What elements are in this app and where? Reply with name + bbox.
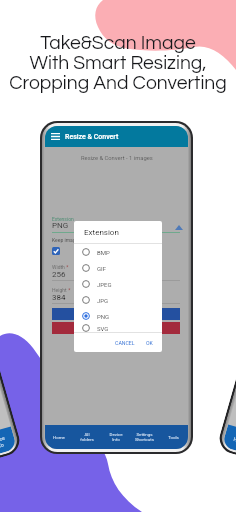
staticText: Resize & Convert <box>65 133 119 141</box>
staticText: Home <box>233 436 236 445</box>
staticText: * <box>67 287 71 293</box>
staticText: JPEG <box>97 281 112 288</box>
button[interactable]: SVG <box>74 324 162 332</box>
staticText: Resize & Convert - 1 images <box>81 155 153 162</box>
staticText: GIF <box>97 265 107 272</box>
staticText: OK <box>146 340 153 346</box>
button[interactable]: Home <box>45 425 73 449</box>
staticText: Extension <box>84 228 119 237</box>
button[interactable]: JPEG <box>74 276 162 292</box>
button[interactable]: All folders <box>73 425 101 449</box>
button[interactable]: GIF <box>74 260 162 276</box>
staticText: BMP <box>97 249 110 256</box>
staticText: * <box>65 264 69 270</box>
staticText: Take&Scan Image <box>40 33 196 53</box>
button[interactable]: OK <box>143 338 156 348</box>
staticText: All folders <box>80 432 94 442</box>
button[interactable]: PNG <box>74 308 162 324</box>
button[interactable]: Open navigation menu <box>45 126 188 147</box>
staticText: Settings Shortcuts <box>135 432 154 442</box>
staticText: Width <box>52 264 65 270</box>
button[interactable]: Settings Shortcuts <box>130 425 159 449</box>
staticText: With Smart Resizing, <box>29 53 207 73</box>
staticText: PNG <box>52 221 69 230</box>
button[interactable]: Device Info <box>101 425 130 449</box>
button[interactable]: BMP <box>74 244 162 260</box>
button[interactable]: JPG <box>74 292 162 308</box>
staticText: Tools <box>168 435 179 440</box>
staticText: Cropping And Converting <box>9 73 227 93</box>
button[interactable]: CANCEL <box>112 338 138 348</box>
staticText: CANCEL <box>115 340 135 346</box>
staticText: Keep images size <box>52 237 91 243</box>
button[interactable]: Cancel <box>52 322 180 334</box>
button[interactable]: Open navigation menu <box>45 126 65 147</box>
button[interactable]: Tools <box>159 425 188 449</box>
staticText: Device Info <box>109 432 123 442</box>
staticText: SVG <box>97 325 109 332</box>
staticText: Device Info <box>0 435 7 450</box>
staticText: 384 <box>52 293 66 302</box>
button[interactable]: Keep images size <box>52 247 60 255</box>
button[interactable]: Resize <box>52 308 180 320</box>
staticText: Home <box>53 435 65 440</box>
staticText: Height <box>52 287 67 293</box>
staticText: JPG <box>97 297 109 304</box>
staticText: 256 <box>52 270 66 279</box>
staticText: Extension <box>52 216 74 222</box>
staticText: PNG <box>97 313 110 320</box>
